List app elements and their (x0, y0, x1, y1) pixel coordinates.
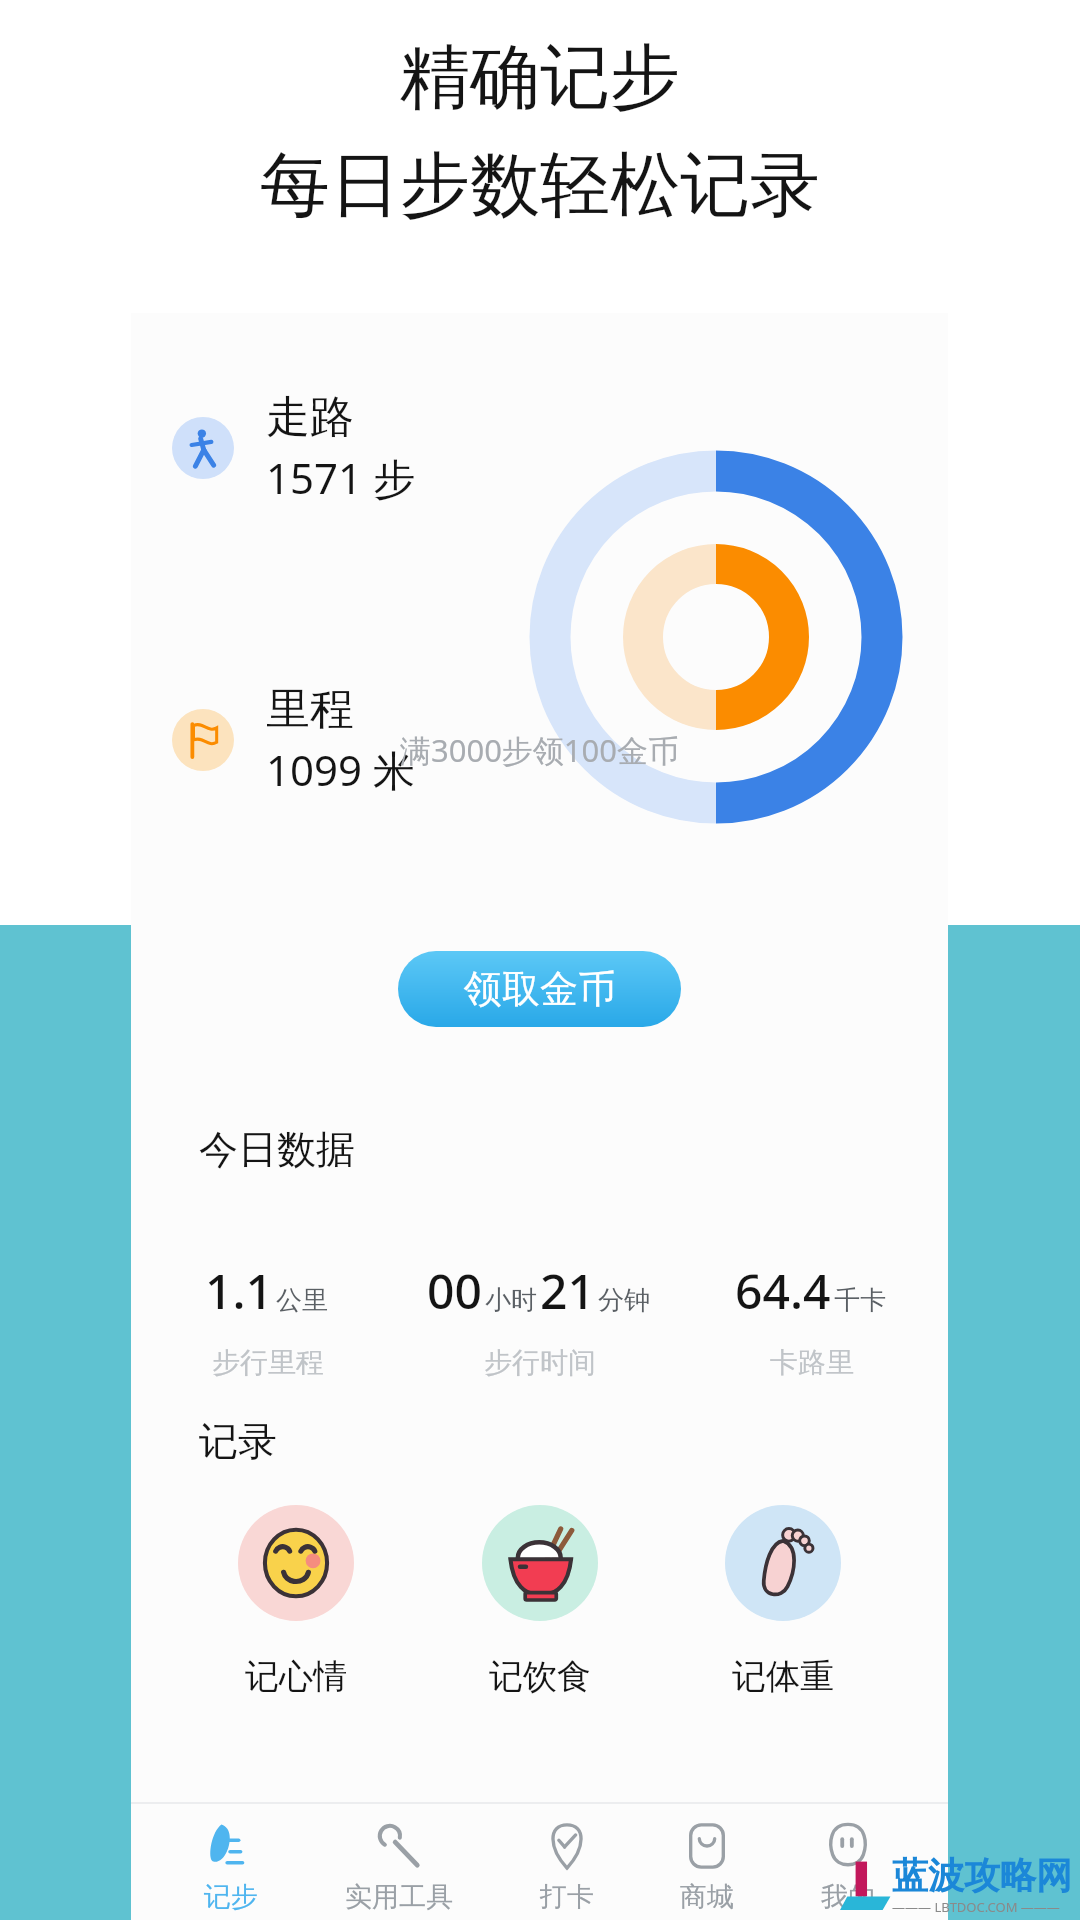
other: Walking (184, 429, 222, 467)
button[interactable]: Tools (331, 1810, 467, 1920)
other: Mood (259, 1526, 333, 1600)
button[interactable]: Check in (526, 1810, 608, 1920)
other: Distance (184, 721, 222, 759)
other: Store (683, 1822, 731, 1870)
staticText: 公里 (276, 1284, 328, 1317)
button[interactable]: Weight (705, 1505, 861, 1698)
staticText: 实用工具 (345, 1880, 453, 1914)
staticText: 里程 (266, 682, 354, 737)
other: Check in (543, 1822, 591, 1870)
staticText: 21 (540, 1258, 595, 1323)
staticText: 千卡 (834, 1284, 886, 1317)
other: Diet (503, 1526, 577, 1600)
staticText: 每日步数轻松记录 (260, 142, 820, 230)
staticText: 小时 (485, 1284, 537, 1317)
staticText: 商城 (680, 1880, 734, 1914)
staticText: 1099 米 (266, 741, 416, 798)
staticText: 走路 (266, 390, 354, 445)
button[interactable]: Distance (172, 677, 416, 803)
staticText: 记步 (204, 1880, 258, 1914)
other: Steps (207, 1822, 255, 1870)
staticText: 1571 步 (266, 449, 416, 506)
staticText: 蓝波攻略网 (892, 1853, 1072, 1898)
staticText: ——— LBTDOC.COM ——— (892, 1898, 1060, 1916)
button[interactable]: Walking (172, 385, 416, 511)
staticText: 卡路里 (770, 1345, 854, 1380)
staticText: 64.4 (735, 1258, 831, 1323)
button[interactable]: Steps (190, 1810, 272, 1920)
staticText: 00 (427, 1258, 482, 1323)
staticText: 1.1 (205, 1258, 273, 1323)
other: Weight (746, 1526, 820, 1600)
staticText: 记体重 (732, 1655, 834, 1698)
staticText: 记饮食 (489, 1655, 591, 1698)
staticText: 打卡 (540, 1880, 594, 1914)
button[interactable]: Diet (462, 1505, 618, 1698)
other: Profile (824, 1822, 872, 1870)
staticText: 步行时间 (484, 1345, 596, 1380)
button[interactable]: Mood (218, 1505, 374, 1698)
staticText: 领取金币 (464, 965, 616, 1013)
staticText: 我的 (821, 1880, 875, 1914)
other: Tools (375, 1822, 423, 1870)
staticText: 分钟 (598, 1284, 650, 1317)
staticText: 记心情 (245, 1655, 347, 1698)
button[interactable]: Store (666, 1810, 748, 1920)
staticText: 精确记步 (400, 34, 680, 122)
button[interactable]: 领取金币 (398, 951, 681, 1027)
staticText: 记录 (199, 1417, 277, 1466)
staticText: 今日数据 (199, 1125, 355, 1174)
button[interactable]: Profile (807, 1810, 889, 1920)
staticText: 满3000步领100金币 (131, 729, 948, 771)
staticText: 步行里程 (212, 1345, 324, 1380)
